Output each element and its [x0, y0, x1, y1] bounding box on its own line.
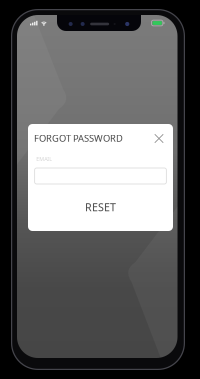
button[interactable]: RESET	[35, 195, 166, 219]
button[interactable]: Close	[150, 129, 168, 147]
staticText: FORGOT PASSWORD	[34, 132, 123, 144]
staticText: RESET	[85, 200, 116, 214]
staticText: EMAIL	[36, 155, 52, 163]
